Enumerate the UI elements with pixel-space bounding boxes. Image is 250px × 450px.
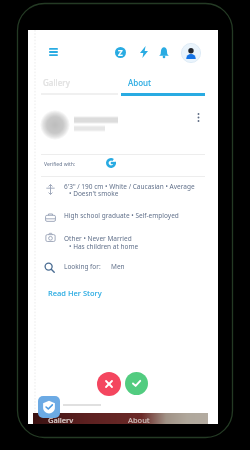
staticText: About xyxy=(128,415,150,423)
staticText: Looking for: xyxy=(64,262,101,271)
button[interactable]: More options xyxy=(190,109,206,125)
staticText: Read Her Story xyxy=(48,288,102,298)
staticText: • Has children at home xyxy=(69,242,139,251)
staticText: Gallery xyxy=(43,77,70,88)
button[interactable]: Menu xyxy=(45,44,61,60)
button[interactable]: Pass xyxy=(97,372,121,396)
button[interactable]: Gallery xyxy=(41,74,118,91)
button[interactable]: About xyxy=(121,74,205,91)
button[interactable]: Credits xyxy=(112,44,128,60)
staticText: Z xyxy=(118,47,123,58)
button[interactable]: Boost xyxy=(136,44,152,60)
button[interactable]: Gallery xyxy=(48,415,74,423)
button[interactable]: Like xyxy=(125,372,148,395)
staticText: About xyxy=(128,77,152,88)
staticText: Gallery xyxy=(48,415,74,423)
staticText: Men xyxy=(111,262,125,271)
button[interactable]: Verified badge xyxy=(38,396,60,418)
staticText: 6'3" / 190 cm • White / Caucasian • Aver… xyxy=(64,182,195,191)
button[interactable]: About xyxy=(128,415,150,423)
staticText: Other • Never Married xyxy=(64,234,132,243)
button[interactable]: Read Her Story xyxy=(48,288,102,298)
staticText: Verified with: xyxy=(44,161,76,168)
staticText: • Doesn't smoke xyxy=(69,189,119,198)
staticText: High school graduate • Self-employed xyxy=(64,211,179,220)
button[interactable]: Profile xyxy=(181,43,201,63)
button[interactable]: Notifications xyxy=(156,44,172,60)
